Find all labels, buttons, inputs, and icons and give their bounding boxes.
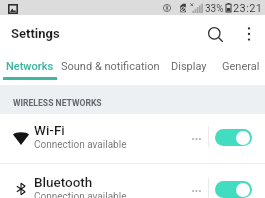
button[interactable]: Wi-Fi: [0, 114, 265, 165]
button[interactable]: Search: [201, 16, 231, 53]
staticText: Connection available: [34, 191, 127, 198]
button[interactable]: Row options: [184, 174, 208, 198]
staticText: Settings: [11, 26, 60, 41]
button[interactable]: Sound & notification: [60, 52, 161, 81]
staticText: Wi-Fi: [34, 122, 65, 138]
button[interactable]: Bluetooth: [0, 166, 265, 198]
staticText: WIRELESS NETWORKS: [13, 98, 102, 108]
staticText: General: [222, 60, 260, 73]
button[interactable]: Networks: [3, 52, 57, 81]
button[interactable]: More options: [238, 15, 260, 52]
staticText: Sound & notification: [61, 60, 160, 73]
button[interactable]: Row options: [184, 122, 208, 156]
staticText: Networks: [6, 60, 54, 73]
button[interactable]: General: [217, 52, 265, 81]
button[interactable]: Toggle: [211, 121, 252, 154]
staticText: 33%: [205, 3, 224, 15]
staticText: Connection available: [34, 139, 127, 151]
button[interactable]: Display: [164, 52, 213, 81]
staticText: 23:21: [233, 2, 263, 15]
staticText: Bluetooth: [34, 174, 93, 190]
button[interactable]: Toggle: [211, 173, 252, 198]
staticText: Display: [171, 60, 207, 73]
